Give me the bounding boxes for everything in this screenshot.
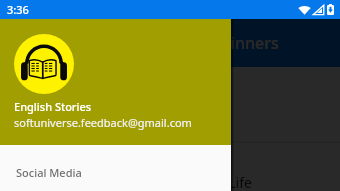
staticText: softuniverse.feedback@gmail.com	[14, 115, 192, 130]
button[interactable]: The Secret of a Happy and Long Life	[0, 143, 340, 191]
staticText: 3:36	[7, 2, 29, 17]
staticText: Social Media	[16, 165, 82, 180]
staticText: The Golden Goose	[16, 95, 137, 114]
staticText: Short Stories for Beginners	[72, 32, 279, 54]
button[interactable]: The Golden Goose	[0, 67, 340, 141]
button[interactable]: Social Media	[0, 154, 231, 191]
button[interactable]: Open navigation drawer	[8, 23, 48, 63]
staticText: English Stories	[14, 99, 92, 114]
staticText: The Secret of a Happy and Long Life	[16, 173, 252, 191]
